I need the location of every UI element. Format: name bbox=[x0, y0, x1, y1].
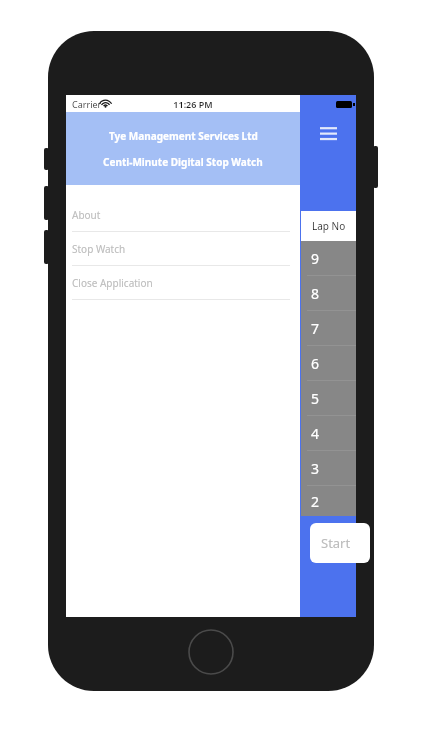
button[interactable]: 8 bbox=[301, 276, 356, 311]
staticText: 2 bbox=[311, 492, 320, 511]
staticText: Tye Management Services Ltd bbox=[109, 129, 258, 143]
staticText: 9 bbox=[311, 249, 320, 268]
staticText: Centi-Minute Digital Stop Watch bbox=[103, 155, 263, 169]
staticText: 8 bbox=[311, 284, 320, 303]
staticText: 3 bbox=[311, 459, 320, 478]
staticText: Close Application bbox=[72, 276, 153, 290]
button[interactable]: About bbox=[66, 198, 300, 232]
button[interactable]: Close Application bbox=[66, 266, 300, 300]
button[interactable]: Stop Watch bbox=[66, 232, 300, 266]
button[interactable]: 3 bbox=[301, 451, 356, 486]
staticText: 6 bbox=[311, 354, 320, 373]
staticText: Start bbox=[321, 534, 351, 552]
button[interactable]: 4 bbox=[301, 416, 356, 451]
button[interactable]: Menu bbox=[300, 112, 356, 152]
staticText: 4 bbox=[311, 424, 320, 443]
button[interactable]: 5 bbox=[301, 381, 356, 416]
staticText: Carrier bbox=[72, 98, 102, 110]
staticText: 5 bbox=[311, 389, 320, 408]
button[interactable]: 6 bbox=[301, 346, 356, 381]
button[interactable]: 9 bbox=[301, 241, 356, 276]
staticText: Lap No bbox=[312, 219, 346, 233]
staticText: 7 bbox=[311, 319, 320, 338]
button[interactable]: 7 bbox=[301, 311, 356, 346]
button[interactable]: 2 bbox=[301, 486, 356, 516]
staticText: About bbox=[72, 208, 101, 222]
button[interactable]: Start bbox=[310, 523, 370, 563]
staticText: Stop Watch bbox=[72, 242, 126, 256]
staticText: 11:26 PM bbox=[48, 98, 338, 110]
